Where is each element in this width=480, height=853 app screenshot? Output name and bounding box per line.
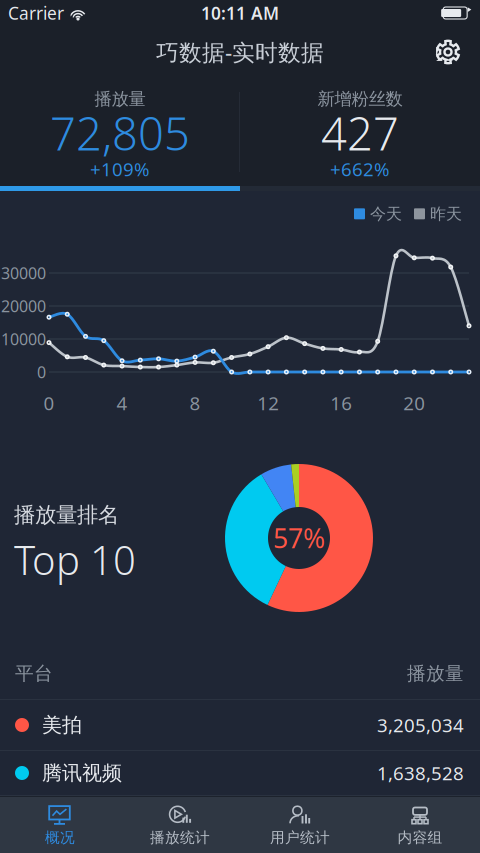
staticText: 8 bbox=[190, 391, 201, 415]
staticText: 昨天 bbox=[430, 204, 462, 224]
staticText: 30000 bbox=[1, 262, 46, 284]
staticText: 巧数据-实时数据 bbox=[156, 37, 324, 67]
staticText: 平台 bbox=[15, 662, 53, 685]
staticText: 概况 bbox=[45, 828, 75, 846]
staticText: Carrier bbox=[8, 1, 64, 24]
staticText: 美拍 bbox=[42, 713, 82, 737]
staticText: 播放量 bbox=[407, 662, 464, 685]
button[interactable]: 播放量 bbox=[0, 78, 240, 186]
staticText: 播放量 bbox=[94, 88, 145, 110]
staticText: 0 bbox=[43, 391, 54, 415]
staticText: Top 10 bbox=[14, 533, 136, 586]
button[interactable]: 播放统计 bbox=[120, 797, 240, 853]
button[interactable]: 腾讯视频 bbox=[0, 751, 480, 796]
staticText: 1,638,528 bbox=[377, 761, 464, 785]
staticText: 3,205,034 bbox=[377, 713, 464, 737]
staticText: 20000 bbox=[1, 295, 46, 317]
button[interactable]: 新增粉丝数 bbox=[240, 78, 480, 186]
staticText: 10:11 AM bbox=[201, 1, 279, 24]
staticText: +109% bbox=[90, 157, 150, 181]
staticText: 427 bbox=[321, 103, 399, 163]
button[interactable]: 概况 bbox=[0, 797, 120, 853]
staticText: 20 bbox=[403, 391, 425, 415]
button[interactable]: Settings bbox=[426, 30, 470, 74]
staticText: 10000 bbox=[1, 328, 46, 350]
button[interactable]: 内容组 bbox=[360, 797, 480, 853]
staticText: 16 bbox=[330, 391, 352, 415]
staticText: 腾讯视频 bbox=[42, 761, 122, 785]
staticText: +662% bbox=[330, 157, 390, 181]
button[interactable]: 用户统计 bbox=[240, 797, 360, 853]
staticText: 今天 bbox=[370, 204, 402, 224]
staticText: 播放统计 bbox=[150, 828, 210, 846]
staticText: 内容组 bbox=[397, 828, 442, 846]
staticText: 新增粉丝数 bbox=[317, 88, 402, 110]
staticText: 57% bbox=[273, 520, 325, 556]
staticText: 0 bbox=[37, 361, 46, 383]
staticText: 72,805 bbox=[50, 103, 190, 163]
button[interactable]: 美拍 bbox=[0, 700, 480, 751]
staticText: 12 bbox=[257, 391, 279, 415]
staticText: 4 bbox=[116, 391, 127, 415]
staticText: 用户统计 bbox=[270, 828, 330, 846]
staticText: 播放量排名 bbox=[14, 502, 119, 528]
